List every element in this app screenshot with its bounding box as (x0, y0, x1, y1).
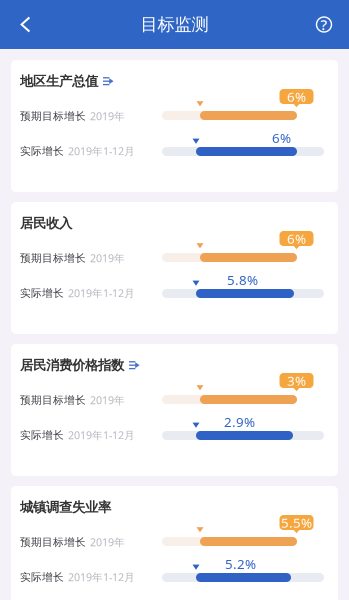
button[interactable]: Back (3, 2, 47, 46)
staticText: 2019年 (90, 109, 125, 123)
staticText: 5.8% (227, 271, 258, 289)
staticText: 5.2% (225, 555, 256, 573)
staticText: 2019年1-12月 (68, 428, 135, 442)
staticText: 2019年1-12月 (68, 286, 135, 300)
staticText: 实际增长 (20, 428, 64, 442)
staticText: 预期目标增长 (20, 393, 86, 407)
staticText: 6% (287, 230, 306, 247)
staticText: 2019年 (90, 535, 125, 549)
staticText: 2019年1-12月 (68, 570, 135, 584)
staticText: 实际增长 (20, 144, 64, 158)
staticText: 5.5% (281, 514, 312, 531)
staticText: 目标监测 (140, 14, 208, 35)
staticText: 居民收入 (20, 215, 72, 231)
staticText: 预期目标增长 (20, 251, 86, 265)
staticText: 2019年 (90, 393, 125, 407)
staticText: 城镇调查失业率 (20, 499, 111, 515)
staticText: 3% (287, 372, 306, 389)
staticText: 预期目标增长 (20, 535, 86, 549)
staticText: 2019年1-12月 (68, 144, 135, 158)
staticText: 2019年 (90, 251, 125, 265)
staticText: 2.9% (224, 413, 255, 431)
staticText: 6% (287, 88, 306, 105)
staticText: 地区生产总值 (20, 73, 98, 89)
staticText: 预期目标增长 (20, 109, 86, 123)
staticText: 居民消费价格指数 (20, 357, 124, 373)
button[interactable]: Help (302, 2, 346, 46)
staticText: ? (320, 15, 327, 34)
staticText: 6% (272, 129, 291, 147)
staticText: 实际增长 (20, 286, 64, 300)
staticText: 实际增长 (20, 570, 64, 584)
